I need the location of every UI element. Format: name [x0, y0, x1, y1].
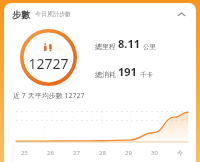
staticText: 總里程 [95, 42, 116, 51]
staticText: 8.11 [118, 36, 140, 51]
staticText: 今日累計步數 [35, 10, 71, 18]
button[interactable]: 步數 [4, 3, 196, 25]
staticText: 今 [177, 149, 183, 157]
staticText: 26 [47, 149, 54, 157]
staticText: 公里 [143, 43, 156, 51]
staticText: 千卡 [140, 71, 153, 79]
staticText: 29 [125, 149, 132, 157]
button[interactable]: Collapse [173, 6, 189, 22]
staticText: 27 [73, 149, 80, 157]
staticText: 近 7 天平均步數 12727 [13, 91, 85, 101]
staticText: 191 [118, 64, 137, 79]
staticText: 25 [21, 149, 28, 157]
staticText: 總消耗 [95, 70, 116, 79]
staticText: 步數 [12, 9, 30, 20]
staticText: 28 [99, 149, 106, 157]
staticText: 30 [151, 149, 158, 157]
staticText: 12727 [28, 54, 69, 73]
